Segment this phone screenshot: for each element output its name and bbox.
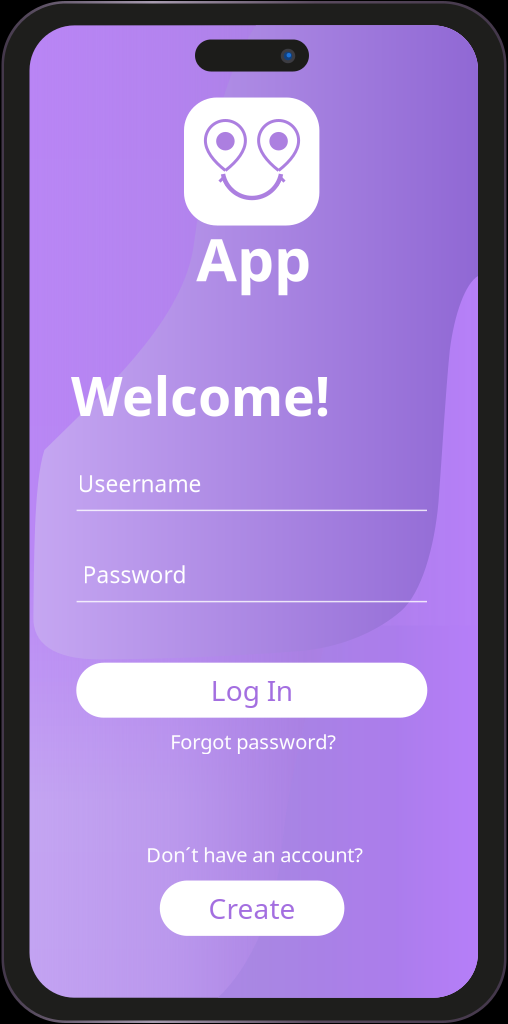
button[interactable]: Create xyxy=(160,880,344,936)
staticText: Create xyxy=(209,890,296,927)
staticText: Don´t have an account? xyxy=(146,841,363,868)
staticText: Password xyxy=(82,559,186,589)
staticText: Forgot password? xyxy=(170,728,336,755)
staticText: Useername xyxy=(77,468,201,498)
staticText: Log In xyxy=(211,672,293,709)
button[interactable]: Forgot password? xyxy=(170,728,336,755)
staticText: Welcome! xyxy=(71,360,330,431)
staticText: App xyxy=(196,219,311,297)
button[interactable]: Log In xyxy=(76,663,427,718)
